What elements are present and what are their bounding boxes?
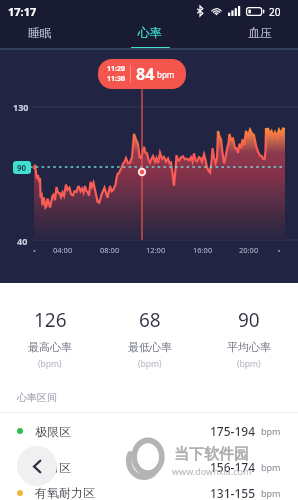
staticText: (bpm): [38, 358, 62, 370]
staticText: www.downxia.com: [172, 465, 252, 477]
staticText: 睡眠: [28, 25, 52, 40]
staticText: 16:00: [193, 245, 213, 255]
staticText: 126: [34, 307, 67, 333]
staticText: 心率区间: [17, 391, 57, 404]
staticText: 84: [136, 63, 155, 85]
button[interactable]: 有氧耐力区: [17, 485, 281, 500]
staticText: 08:00: [100, 245, 120, 255]
staticText: 最低心率: [128, 340, 172, 354]
staticText: 当下软件园: [174, 445, 249, 464]
staticText: 17:17: [8, 4, 37, 19]
staticText: bpm: [261, 487, 281, 499]
button[interactable]: 血压: [230, 22, 290, 50]
staticText: 血压: [248, 25, 272, 40]
staticText: 11:30: [107, 74, 125, 84]
staticText: bpm: [261, 425, 281, 437]
staticText: 最高心率: [28, 340, 72, 354]
button[interactable]: 极限区: [17, 413, 281, 449]
button[interactable]: Back: [17, 446, 57, 486]
staticText: 90: [17, 162, 27, 173]
staticText: 20:00: [239, 245, 259, 255]
staticText: 耐力区: [35, 460, 71, 475]
staticText: 68: [139, 307, 161, 333]
staticText: bpm: [261, 461, 281, 473]
staticText: 131-155: [210, 485, 256, 500]
button[interactable]: 耐力区: [17, 449, 281, 485]
staticText: 04:00: [53, 245, 73, 255]
staticText: 心率: [138, 25, 162, 40]
staticText: 极限区: [35, 424, 71, 439]
staticText: 12:00: [146, 245, 166, 255]
staticText: (bpm): [138, 358, 162, 370]
staticText: 90: [238, 307, 260, 333]
button[interactable]: 心率: [120, 22, 180, 50]
staticText: 130: [13, 101, 29, 113]
staticText: 175-194: [210, 423, 256, 439]
staticText: 156-174: [210, 459, 256, 475]
staticText: (bpm): [237, 358, 261, 370]
staticText: 平均心率: [227, 340, 271, 354]
staticText: 有氧耐力区: [35, 485, 95, 500]
staticText: 11:20: [107, 64, 125, 74]
button[interactable]: 睡眠: [10, 22, 70, 50]
staticText: 20: [269, 5, 281, 19]
staticText: 40: [17, 235, 28, 247]
staticText: bpm: [157, 69, 175, 80]
